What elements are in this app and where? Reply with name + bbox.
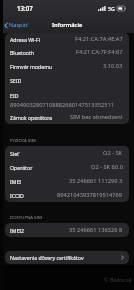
button[interactable]: Operátor — [5, 160, 129, 174]
staticText: EID — [10, 92, 19, 99]
staticText: F4:21:CA:7A:4E:A7 — [75, 35, 123, 43]
staticText: © Bazos.sk — [104, 276, 132, 283]
button[interactable]: ICCID — [5, 188, 129, 202]
button[interactable]: IMEI2 — [5, 223, 129, 237]
staticText: Adresa Wi-Fi — [10, 36, 41, 43]
staticText: IMEI — [10, 178, 22, 185]
button[interactable]: Sieť — [5, 146, 129, 160]
staticText: 3.10.03 — [103, 62, 123, 70]
button[interactable]: EID — [5, 87, 129, 110]
staticText: Bluetooth — [10, 49, 35, 56]
button[interactable]: SEID — [5, 73, 129, 87]
button[interactable]: IMEI — [5, 174, 129, 188]
staticText: F4:21:CA:7F:F4:67 — [76, 48, 123, 56]
staticText: SEID — [10, 77, 22, 84]
button[interactable]: Zámok operátora — [5, 110, 129, 124]
staticText: SIM bez obmedzení — [70, 113, 123, 121]
staticText: O2 - SK — [103, 149, 123, 157]
staticText: 89049032807108882680147513352511 — [10, 101, 115, 109]
button[interactable]: Adresa Wi-Fi — [5, 33, 129, 45]
staticText: Nastavenia dôvery certifikátov — [10, 254, 84, 261]
staticText: ICCID — [10, 192, 24, 199]
staticText: 35 246661 111299 3 — [69, 177, 123, 185]
staticText: 5G — [108, 5, 115, 12]
staticText: IMEI2 — [10, 227, 25, 234]
button[interactable]: Nastavenia dôvery certifikátov — [5, 251, 129, 264]
staticText: Informácie — [52, 21, 83, 29]
button[interactable]: Naspäť — [0, 17, 32, 33]
staticText: 13:07 — [17, 4, 33, 12]
staticText: DOSTUPNÁ SIM — [10, 214, 42, 220]
staticText: O2 - SK 60.0 — [91, 163, 123, 171]
staticText: Zámok operátora — [10, 114, 53, 121]
staticText: 89421043937819514769 — [57, 191, 123, 199]
button[interactable]: Bluetooth — [5, 45, 129, 59]
staticText: Operátor — [10, 164, 33, 171]
staticText: Naspäť — [9, 21, 28, 29]
staticText: FYZICKÁ SIM — [10, 137, 36, 143]
staticText: Firmvér modemu — [10, 63, 53, 70]
staticText: Sieť — [10, 150, 19, 157]
staticText: 35 246661 136526 8 — [69, 226, 123, 234]
button[interactable]: Firmvér modemu — [5, 59, 129, 73]
